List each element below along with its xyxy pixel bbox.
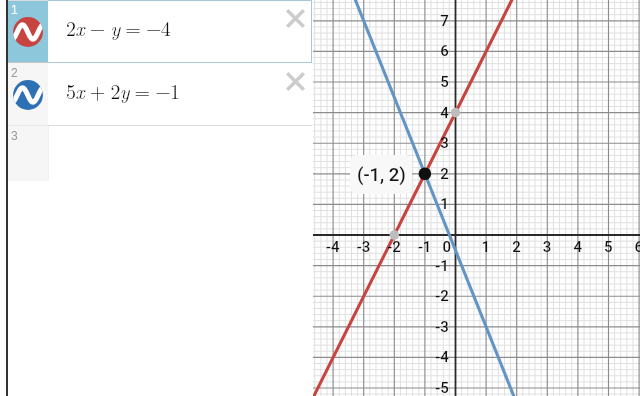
- staticText: 5x + 2y = −1: [66, 76, 180, 104]
- staticText: 2: [11, 66, 18, 79]
- staticText: 1: [11, 3, 18, 16]
- button[interactable]: 2: [0, 63, 313, 126]
- button[interactable]: Delete expression 2: [285, 71, 306, 92]
- button[interactable]: 1: [0, 0, 313, 63]
- button[interactable]: 3: [0, 126, 313, 181]
- staticText: 3: [11, 129, 18, 142]
- button[interactable]: Delete expression 1: [285, 8, 306, 29]
- staticText: (-1, 2): [357, 164, 406, 186]
- staticText: 2x − y = −4: [66, 13, 171, 41]
- button[interactable]: Point (-1, 2): [350, 155, 412, 194]
